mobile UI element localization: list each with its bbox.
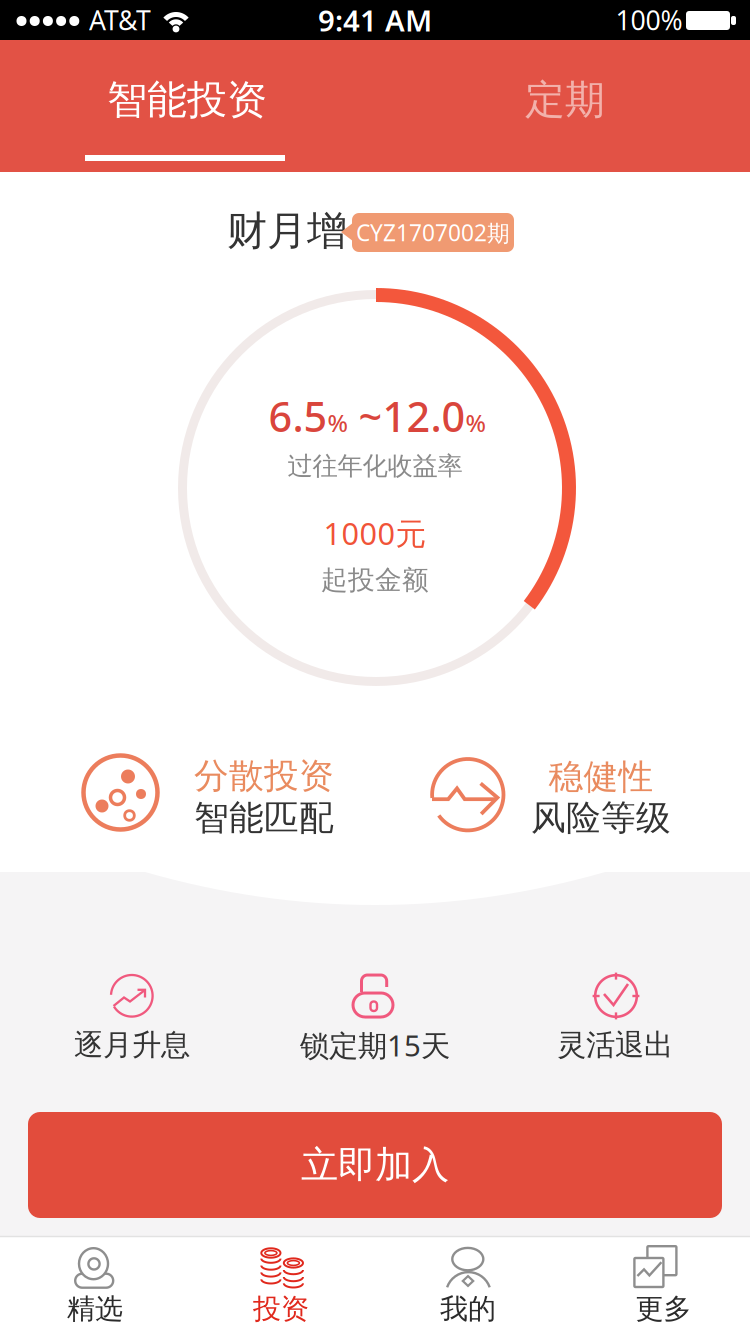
staticText: 财月增 <box>227 206 347 255</box>
staticText: AT&T <box>89 2 151 38</box>
button[interactable]: 定期 <box>375 40 750 172</box>
button[interactable]: 投资 <box>187 1236 375 1334</box>
button[interactable]: 更多 <box>562 1236 750 1334</box>
staticText: 1000元 <box>323 513 426 553</box>
button[interactable]: 我的 <box>375 1236 562 1334</box>
staticText: 我的 <box>440 1292 496 1326</box>
staticText: 过往年化收益率 <box>287 450 462 481</box>
staticText: 分散投资 <box>194 755 334 797</box>
staticText: 更多 <box>635 1292 691 1326</box>
staticText: 定期 <box>525 75 605 124</box>
button[interactable]: 精选 <box>0 1236 187 1334</box>
staticText: % <box>327 407 347 439</box>
staticText: % <box>465 407 485 439</box>
staticText: 立即加入 <box>301 1142 449 1188</box>
staticText: 智能投资 <box>107 75 267 124</box>
staticText: 灵活退出 <box>557 1027 673 1063</box>
staticText: 100% <box>615 2 682 38</box>
staticText: 起投金额 <box>321 564 429 596</box>
staticText: 投资 <box>253 1292 309 1326</box>
staticText: 智能匹配 <box>194 797 334 839</box>
staticText: 6.5 <box>268 389 327 443</box>
staticText: CYZ1707002期 <box>356 217 510 248</box>
button[interactable]: 立即加入 <box>28 1112 722 1218</box>
button[interactable]: 智能投资 <box>0 40 375 172</box>
staticText: 精选 <box>67 1292 123 1326</box>
staticText: 9:41 AM <box>318 0 432 39</box>
staticText: 风险等级 <box>531 797 671 839</box>
staticText: 逐月升息 <box>74 1027 190 1063</box>
staticText: ~12.0 <box>347 389 465 443</box>
staticText: 稳健性 <box>548 756 653 798</box>
staticText: 锁定期15天 <box>300 1025 450 1064</box>
